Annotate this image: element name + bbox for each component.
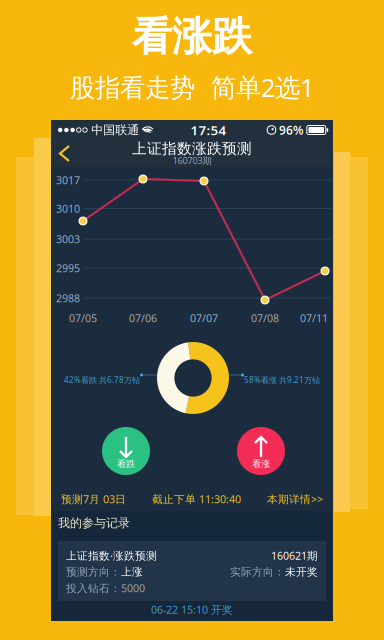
- staticText: 2995: [56, 261, 80, 275]
- staticText: 58%看涨 共9.21万钻: [244, 375, 320, 385]
- staticText: 07/08: [251, 311, 279, 325]
- button[interactable]: 看涨: [237, 427, 285, 475]
- staticText: 看涨跌: [132, 12, 252, 61]
- staticText: 2988: [56, 291, 80, 305]
- button[interactable]: 看跌: [102, 427, 150, 475]
- button[interactable]: 本期详情>>: [267, 492, 323, 506]
- staticText: 看跌: [117, 458, 135, 470]
- staticText: 预测7月 03日: [61, 492, 126, 506]
- staticText: 本期详情>>: [267, 492, 323, 506]
- staticText: 96%: [276, 122, 304, 138]
- staticText: 07/07: [190, 311, 218, 325]
- staticText: 3017: [56, 173, 80, 187]
- staticText: 3010: [56, 201, 80, 216]
- staticText: 07/05: [69, 311, 97, 325]
- staticText: 07/11: [300, 311, 328, 325]
- staticText: 上涨: [121, 565, 143, 578]
- staticText: 17:54: [191, 121, 227, 139]
- staticText: 160703期: [172, 154, 211, 167]
- staticText: 看涨: [252, 458, 270, 470]
- staticText: 截止下单 11:30:40: [152, 492, 241, 506]
- staticText: 中国联通: [91, 123, 139, 137]
- staticText: 上证指数涨跌预测: [132, 139, 252, 157]
- staticText: 上证指数·涨跌预测: [66, 548, 157, 563]
- staticText: 07/06: [129, 311, 157, 325]
- staticText: 3003: [56, 232, 80, 246]
- staticText: 预测方向：: [66, 565, 121, 578]
- staticText: 股指看走势 简单2选1: [70, 70, 314, 104]
- staticText: 我的参与记录: [58, 516, 130, 530]
- staticText: 06-22 15:10 开奖: [151, 602, 233, 617]
- button[interactable]: Back: [51, 137, 85, 170]
- staticText: 实际方向：: [230, 565, 285, 578]
- staticText: 未开奖: [285, 565, 318, 578]
- staticText: 160621期: [271, 548, 318, 563]
- staticText: 42%看跌 共6.78万钻: [64, 375, 140, 385]
- staticText: 投入钻石：5000: [66, 581, 145, 595]
